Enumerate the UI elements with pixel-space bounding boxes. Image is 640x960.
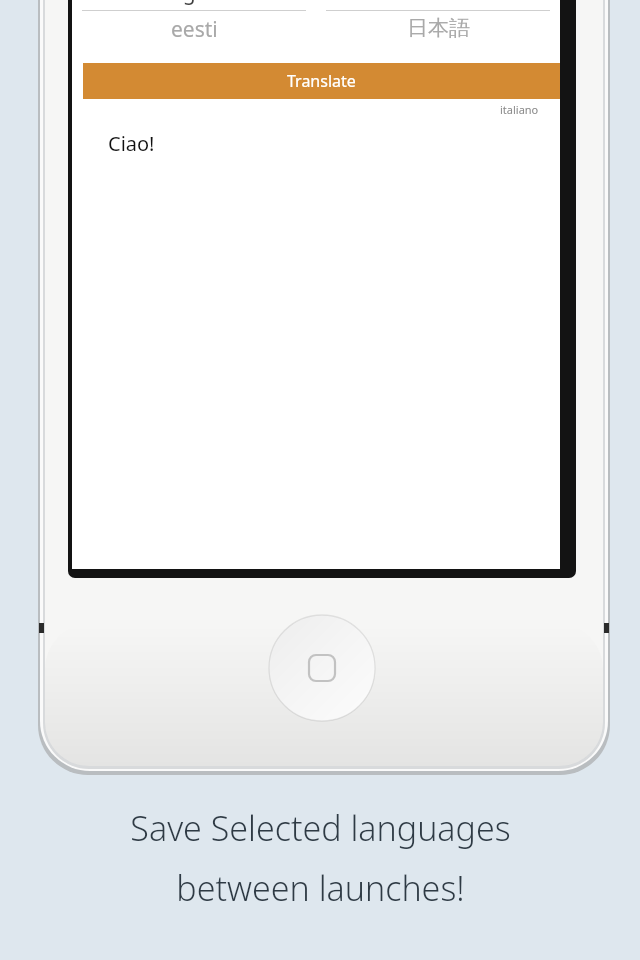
staticText: between launches!	[176, 865, 465, 911]
staticText: English	[158, 0, 230, 7]
button[interactable]: English	[72, 0, 316, 63]
staticText: italiano	[500, 102, 539, 117]
button[interactable]: Translate	[83, 63, 560, 99]
staticText: Save Selected languages	[130, 805, 511, 851]
staticText: Translate	[287, 70, 356, 92]
staticText: Ciao!	[108, 130, 155, 157]
button[interactable]: Italiano	[316, 0, 560, 63]
staticText: eesti	[171, 15, 218, 41]
button[interactable]: Home	[269, 615, 375, 721]
staticText: 日本語	[407, 15, 470, 41]
